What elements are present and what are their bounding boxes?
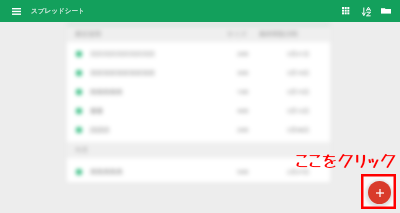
staticText: 3月15日	[287, 88, 310, 96]
staticText: 3KB	[237, 69, 249, 77]
staticText: 1KB	[237, 88, 249, 96]
button[interactable]: Menu	[10, 5, 22, 17]
staticText: 2月27日	[287, 168, 310, 176]
button[interactable]: 画画画画画	[67, 82, 330, 101]
staticText: スプレッドシート	[31, 7, 85, 15]
staticText: 2KB	[237, 126, 249, 134]
button[interactable]: 黒黒黒黒黒	[67, 162, 330, 181]
staticText: 目目目目目目目目目目	[90, 69, 155, 77]
button[interactable]: 最近使用	[67, 26, 330, 42]
staticText: 3月21日	[287, 50, 310, 58]
staticText: 語語語	[90, 126, 110, 134]
staticText: 3月08日	[287, 126, 310, 134]
staticText: 最近使用	[75, 30, 101, 38]
staticText: 3月12日	[287, 107, 310, 115]
staticText: 4KB	[237, 107, 249, 115]
staticText: 5KB	[237, 168, 249, 176]
button[interactable]: Sort	[358, 3, 374, 19]
button[interactable]: 語語語	[67, 120, 330, 139]
button[interactable]: Create new spreadsheet	[368, 181, 391, 204]
button[interactable]: 書書	[67, 101, 330, 120]
staticText: 今月	[75, 146, 88, 154]
staticText: 3月19日	[287, 69, 310, 77]
staticText: 日日日日日日日日日日	[90, 50, 155, 58]
staticText: 最終閲覧日時	[259, 30, 298, 38]
staticText: 黒黒黒黒黒	[90, 168, 123, 176]
button[interactable]: Folder	[378, 3, 394, 19]
button[interactable]: Grid view	[338, 3, 354, 19]
staticText: ここをクリック	[295, 147, 397, 172]
staticText: 2KB	[237, 50, 249, 58]
staticText: 画画画画画	[90, 88, 123, 96]
button[interactable]: 日日日日日日日日日日	[67, 44, 330, 63]
button[interactable]: 目目目目目目目目目目	[67, 63, 330, 82]
staticText: 書書	[90, 107, 103, 115]
button[interactable]: 今月	[67, 142, 330, 158]
